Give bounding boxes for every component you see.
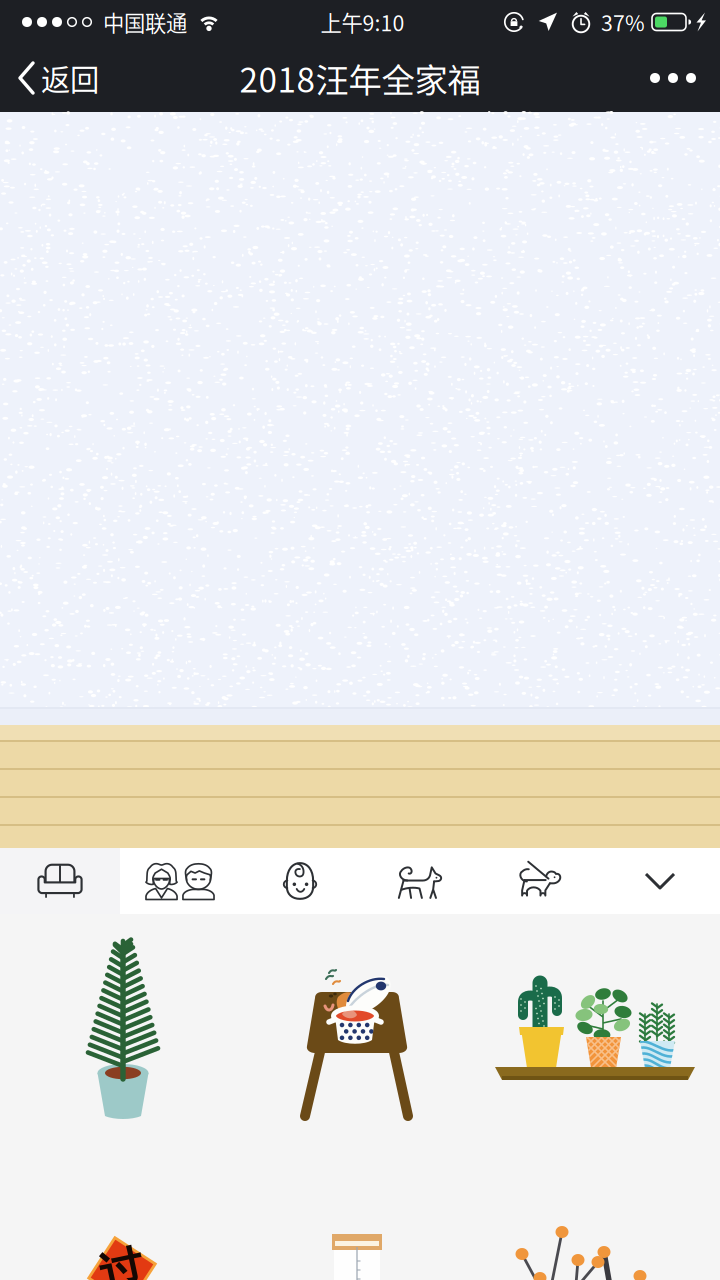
button[interactable]: Wall calendar (331, 1233, 383, 1280)
staticText: 返回 (41, 57, 99, 99)
button[interactable]: Show all categories (600, 848, 720, 914)
button[interactable]: 返回 (0, 48, 113, 108)
button[interactable]: Hot pot table (297, 958, 417, 1123)
staticText: 37% (601, 7, 645, 37)
button[interactable]: Furniture (0, 848, 120, 914)
staticText: 2018汪年全家福 (239, 54, 480, 102)
button[interactable]: Dogs (480, 848, 600, 914)
staticText: 上午9:10 (320, 7, 404, 37)
button[interactable]: More options (626, 53, 720, 103)
button[interactable]: Plant shelf (490, 957, 700, 1097)
button[interactable]: Cats (360, 848, 480, 914)
button[interactable]: Adults (120, 848, 240, 914)
staticText: 过 (99, 1243, 144, 1280)
button[interactable]: Potted pine (78, 933, 168, 1123)
button[interactable]: New year banner (85, 1234, 159, 1280)
button[interactable]: Children (240, 848, 360, 914)
staticText: 中国联通 (103, 7, 187, 37)
button[interactable]: Berry branches (516, 1214, 666, 1280)
